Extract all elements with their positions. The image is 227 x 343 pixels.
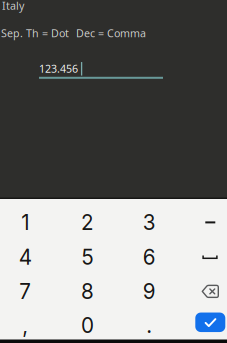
button[interactable]: Delete (184, 274, 227, 308)
button[interactable]: Minus (184, 205, 227, 239)
button[interactable]: . (119, 309, 179, 343)
staticText: 1 (21, 210, 29, 235)
staticText: 9 (143, 279, 156, 304)
button[interactable]: Space (184, 240, 227, 274)
staticText: 4 (19, 245, 32, 270)
button[interactable]: 6 (119, 240, 179, 274)
staticText: 6 (143, 245, 156, 270)
button[interactable]: 9 (119, 274, 179, 308)
button[interactable]: , (0, 309, 55, 343)
button[interactable]: 4 (0, 240, 55, 274)
staticText: 123.456 (39, 61, 78, 76)
staticText: 8 (81, 279, 94, 304)
staticText: 0 (81, 313, 94, 338)
staticText: 5 (82, 245, 94, 270)
button[interactable]: 7 (0, 274, 55, 308)
staticText: Sep. Th = Dot (1, 26, 69, 40)
staticText: , (22, 313, 28, 338)
button[interactable]: 3 (119, 205, 179, 239)
button[interactable]: 0 (58, 309, 118, 343)
staticText: Dec = Comma (76, 26, 146, 40)
staticText: 2 (81, 210, 94, 235)
button[interactable]: 8 (58, 274, 118, 308)
staticText: 3 (143, 210, 156, 235)
staticText: Italy (2, 0, 24, 13)
button[interactable]: 5 (58, 240, 118, 274)
button[interactable]: Done (184, 307, 227, 337)
button[interactable]: 1 (0, 205, 55, 239)
staticText: . (146, 313, 152, 338)
staticText: 7 (19, 279, 31, 304)
button[interactable]: 2 (58, 205, 118, 239)
